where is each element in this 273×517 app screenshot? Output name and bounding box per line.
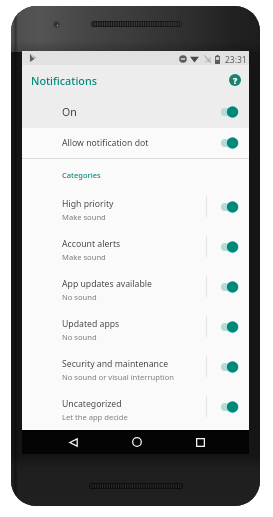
button[interactable]: App updates available [22,270,249,310]
button[interactable]: Toggle [221,130,249,156]
button[interactable]: Toggle [221,99,249,125]
button[interactable]: Allow notification dot [22,128,249,158]
button[interactable]: Account alerts [22,230,249,270]
staticText: 23:31 [225,54,247,66]
button[interactable]: Toggle [221,394,249,420]
staticText: Categories [62,170,101,180]
staticText: On [62,105,221,119]
staticText: Uncategorized [62,398,122,410]
button[interactable]: Home [126,430,148,454]
staticText: No sound [62,292,97,302]
staticText: Security and maintenance [62,358,169,370]
staticText: Make sound [62,252,106,262]
button[interactable]: Back [62,430,84,454]
button[interactable]: Toggle [221,194,249,220]
button[interactable]: Recent apps [189,430,211,454]
button[interactable]: High priority [22,190,249,230]
staticText: App updates available [62,278,152,290]
staticText: No sound or visual interruption [62,372,174,382]
button[interactable]: Updated apps [22,310,249,350]
staticText: Updated apps [62,318,120,330]
staticText: High priority [62,198,114,210]
staticText: Make sound [62,212,106,222]
button[interactable]: Security and maintenance [22,350,249,390]
staticText: Notifications [31,73,97,88]
button[interactable]: On [22,95,249,128]
staticText: Allow notification dot [62,137,221,149]
staticText: ? [233,74,238,86]
button[interactable]: Toggle [221,274,249,300]
staticText: No sound [62,332,97,342]
staticText: Account alerts [62,238,121,250]
button[interactable]: Toggle [221,234,249,260]
button[interactable]: Toggle [221,314,249,340]
button[interactable]: Help [225,70,245,90]
button[interactable]: Uncategorized [22,390,249,430]
staticText: Let the app decide [62,412,128,422]
button[interactable]: Toggle [221,354,249,380]
